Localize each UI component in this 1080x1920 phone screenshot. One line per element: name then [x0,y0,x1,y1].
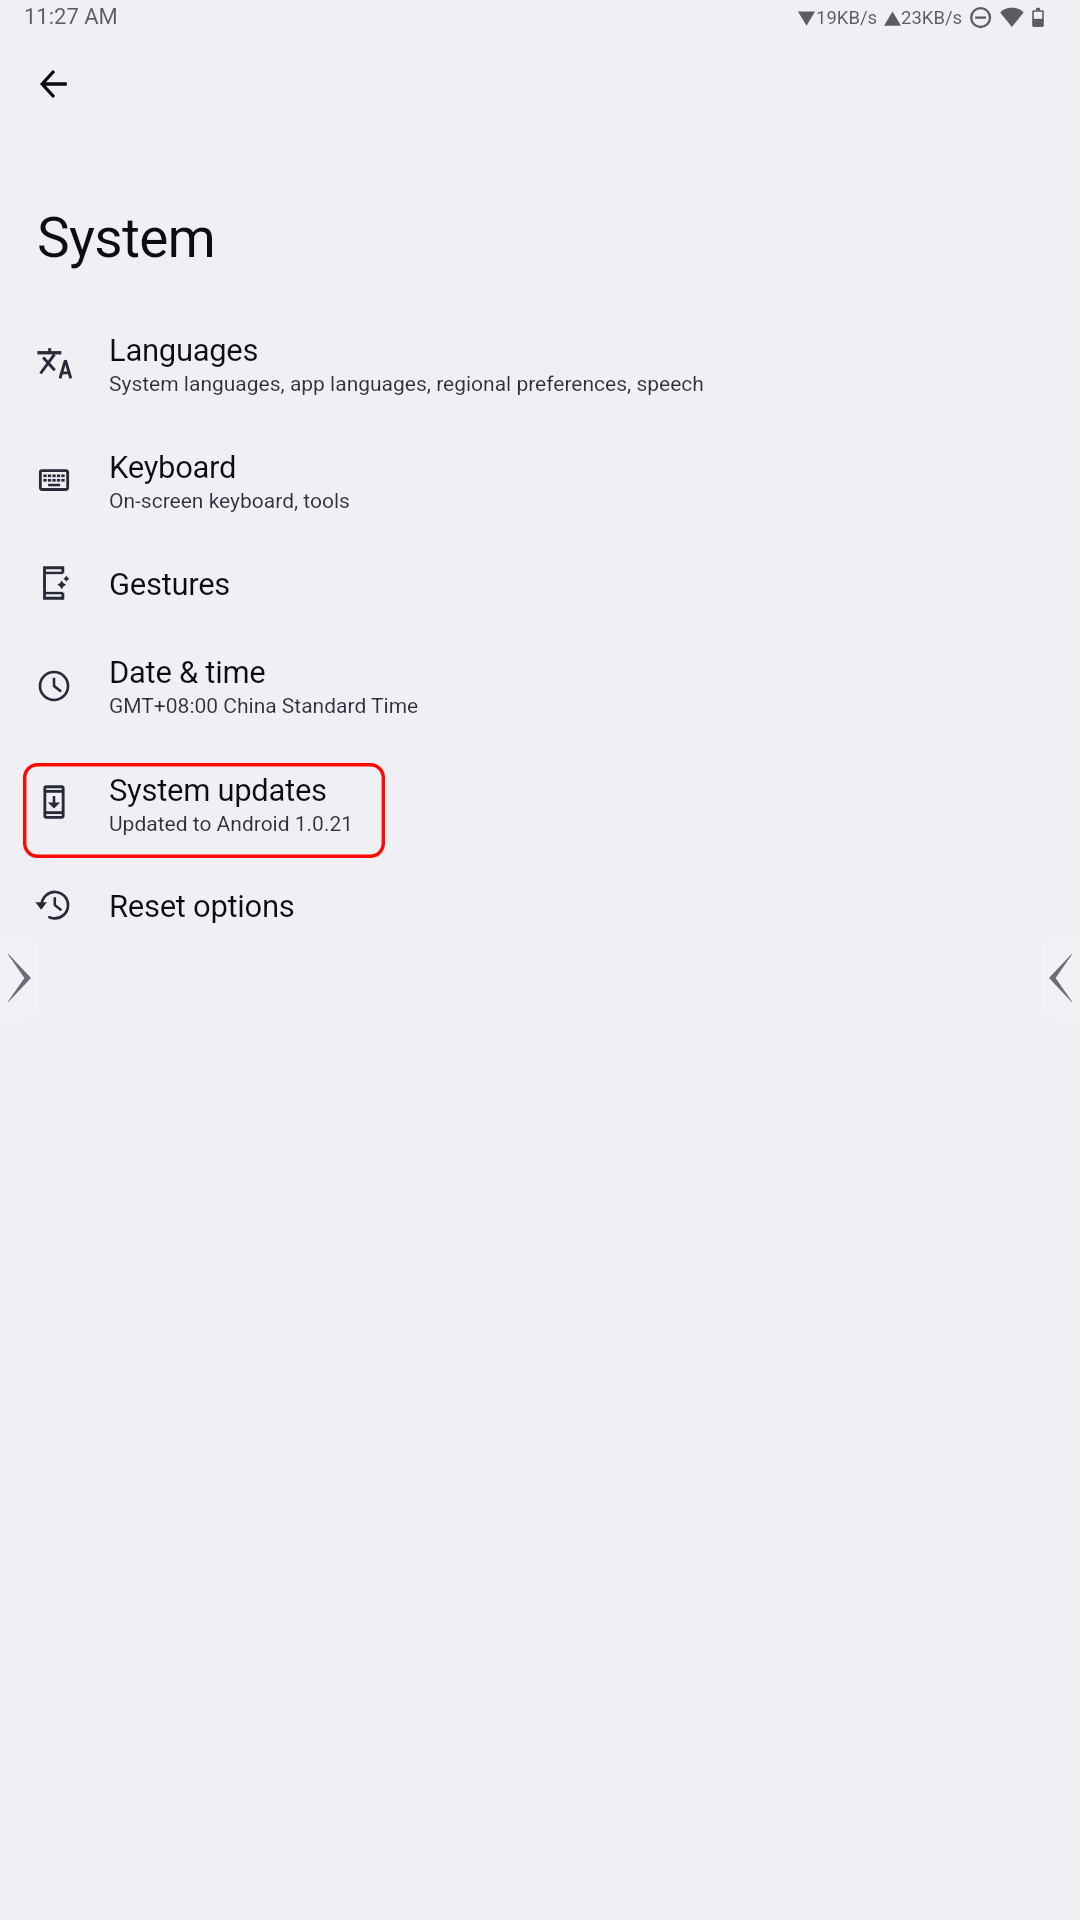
button[interactable]: Date & time [0,626,1080,743]
button[interactable]: System updates [0,744,1080,861]
staticText: Languages [109,332,259,368]
button[interactable]: Keyboard [0,421,1080,538]
staticText: Date & time [109,654,266,690]
staticText: System languages, app languages, regiona… [109,372,704,397]
button[interactable]: Gestures [0,538,1080,626]
button[interactable]: Reset options [0,860,1080,948]
staticText: GMT+08:00 China Standard Time [109,694,419,719]
staticText: System [37,206,216,270]
staticText: Gestures [109,566,231,602]
staticText: System updates [109,772,327,808]
staticText: On-screen keyboard, tools [109,489,350,514]
staticText: Updated to Android 1.0.21 [109,812,354,837]
staticText: 11:27 AM [24,4,118,30]
staticText: 23KB/s [901,7,963,29]
button[interactable]: Languages [0,304,1080,421]
button[interactable]: Back gesture, right edge [1041,936,1080,1019]
button[interactable]: Navigate up [18,48,90,120]
staticText: Reset options [109,888,295,924]
staticText: 19KB/s [816,7,878,29]
staticText: Keyboard [109,449,237,485]
button[interactable]: Back gesture, left edge [0,936,39,1019]
